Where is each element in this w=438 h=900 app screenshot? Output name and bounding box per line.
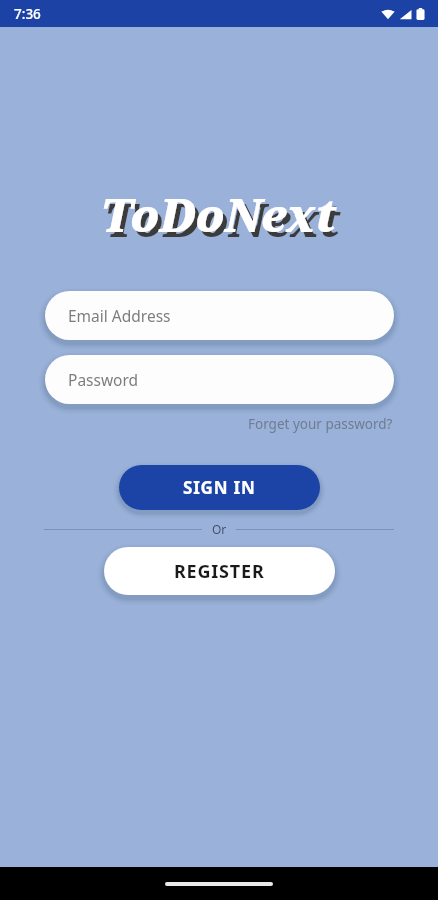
button[interactable]: Email Address	[45, 291, 394, 340]
staticText: Password	[68, 369, 139, 390]
staticText: REGISTER	[174, 559, 265, 584]
staticText: ToDoNext	[105, 189, 341, 250]
staticText: Email Address	[68, 305, 171, 326]
button[interactable]: SIGN IN	[119, 465, 320, 510]
staticText: 7:36	[14, 5, 41, 23]
staticText: Or	[212, 521, 227, 537]
button[interactable]: REGISTER	[104, 547, 335, 595]
staticText: Forget your password?	[248, 415, 393, 433]
button[interactable]: Password	[45, 355, 394, 404]
staticText: SIGN IN	[183, 476, 256, 499]
button[interactable]: Forget your password?	[246, 412, 395, 436]
staticText: ToDoNext	[101, 184, 337, 245]
button[interactable]: Home	[165, 882, 273, 886]
